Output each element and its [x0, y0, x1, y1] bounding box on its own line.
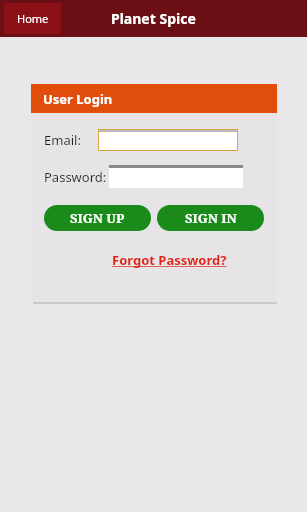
staticText: Planet Spice: [111, 9, 196, 28]
staticText: SIGN IN: [185, 209, 237, 227]
button[interactable]: SIGN UP: [44, 205, 151, 231]
staticText: Home: [17, 11, 49, 26]
staticText: User Login: [43, 90, 113, 108]
button[interactable]: SIGN IN: [157, 205, 264, 231]
button[interactable]: Forgot Password?: [112, 251, 227, 269]
button[interactable]: [109, 165, 243, 188]
staticText: SIGN UP: [70, 209, 125, 227]
staticText: Forgot Password?: [112, 251, 227, 269]
button[interactable]: Home: [4, 3, 61, 34]
staticText: Password:: [44, 168, 107, 186]
button[interactable]: [99, 130, 237, 150]
staticText: Email:: [44, 131, 81, 149]
